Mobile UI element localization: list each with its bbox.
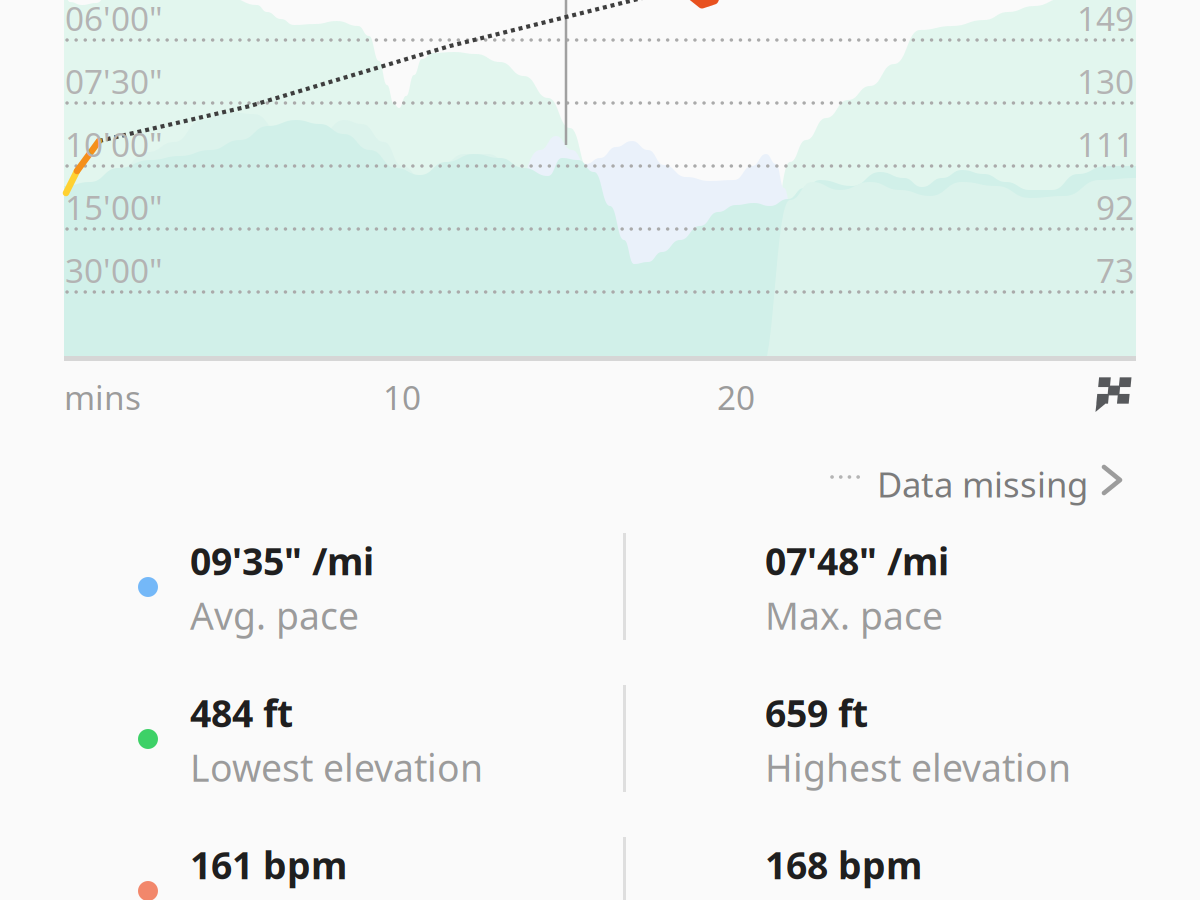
staticText: 07'48" /mi	[765, 536, 949, 586]
staticText: 659 ft	[765, 688, 868, 738]
staticText: 484 ft	[190, 688, 293, 738]
staticText: 30'00"	[65, 248, 163, 292]
staticText: 07'30"	[65, 59, 163, 103]
staticText: 09'35" /mi	[190, 536, 374, 586]
staticText: 168 bpm	[765, 840, 922, 890]
staticText: 111	[1077, 122, 1134, 166]
staticText: Data missing	[877, 461, 1088, 507]
button[interactable]: Data missing	[820, 453, 1136, 513]
staticText: 149	[1077, 0, 1134, 40]
staticText: 20	[717, 375, 755, 419]
staticText: mins	[64, 375, 141, 419]
staticText: 73	[1096, 248, 1134, 292]
button[interactable]: Finish	[1097, 378, 1137, 418]
staticText: Max. pace	[765, 591, 943, 640]
staticText: 161 bpm	[190, 840, 347, 890]
staticText: 15'00"	[65, 185, 163, 229]
staticText: 130	[1077, 59, 1134, 103]
staticText: 92	[1096, 185, 1134, 229]
staticText: Avg. pace	[190, 591, 359, 640]
staticText: 10'00"	[65, 122, 163, 166]
staticText: 10	[383, 375, 421, 419]
staticText: 06'00"	[65, 0, 163, 40]
staticText: Highest elevation	[765, 743, 1071, 792]
staticText: Lowest elevation	[190, 743, 483, 792]
